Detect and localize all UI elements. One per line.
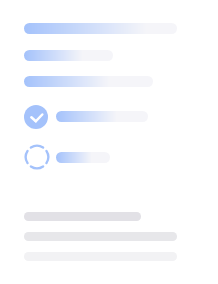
button[interactable] xyxy=(56,111,148,122)
button[interactable] xyxy=(56,152,110,163)
button[interactable] xyxy=(24,76,153,87)
button[interactable] xyxy=(24,23,177,34)
button[interactable] xyxy=(24,212,141,221)
button[interactable]: Task in progress xyxy=(24,144,50,170)
button[interactable]: Task completed xyxy=(24,105,48,129)
button[interactable] xyxy=(24,50,113,61)
